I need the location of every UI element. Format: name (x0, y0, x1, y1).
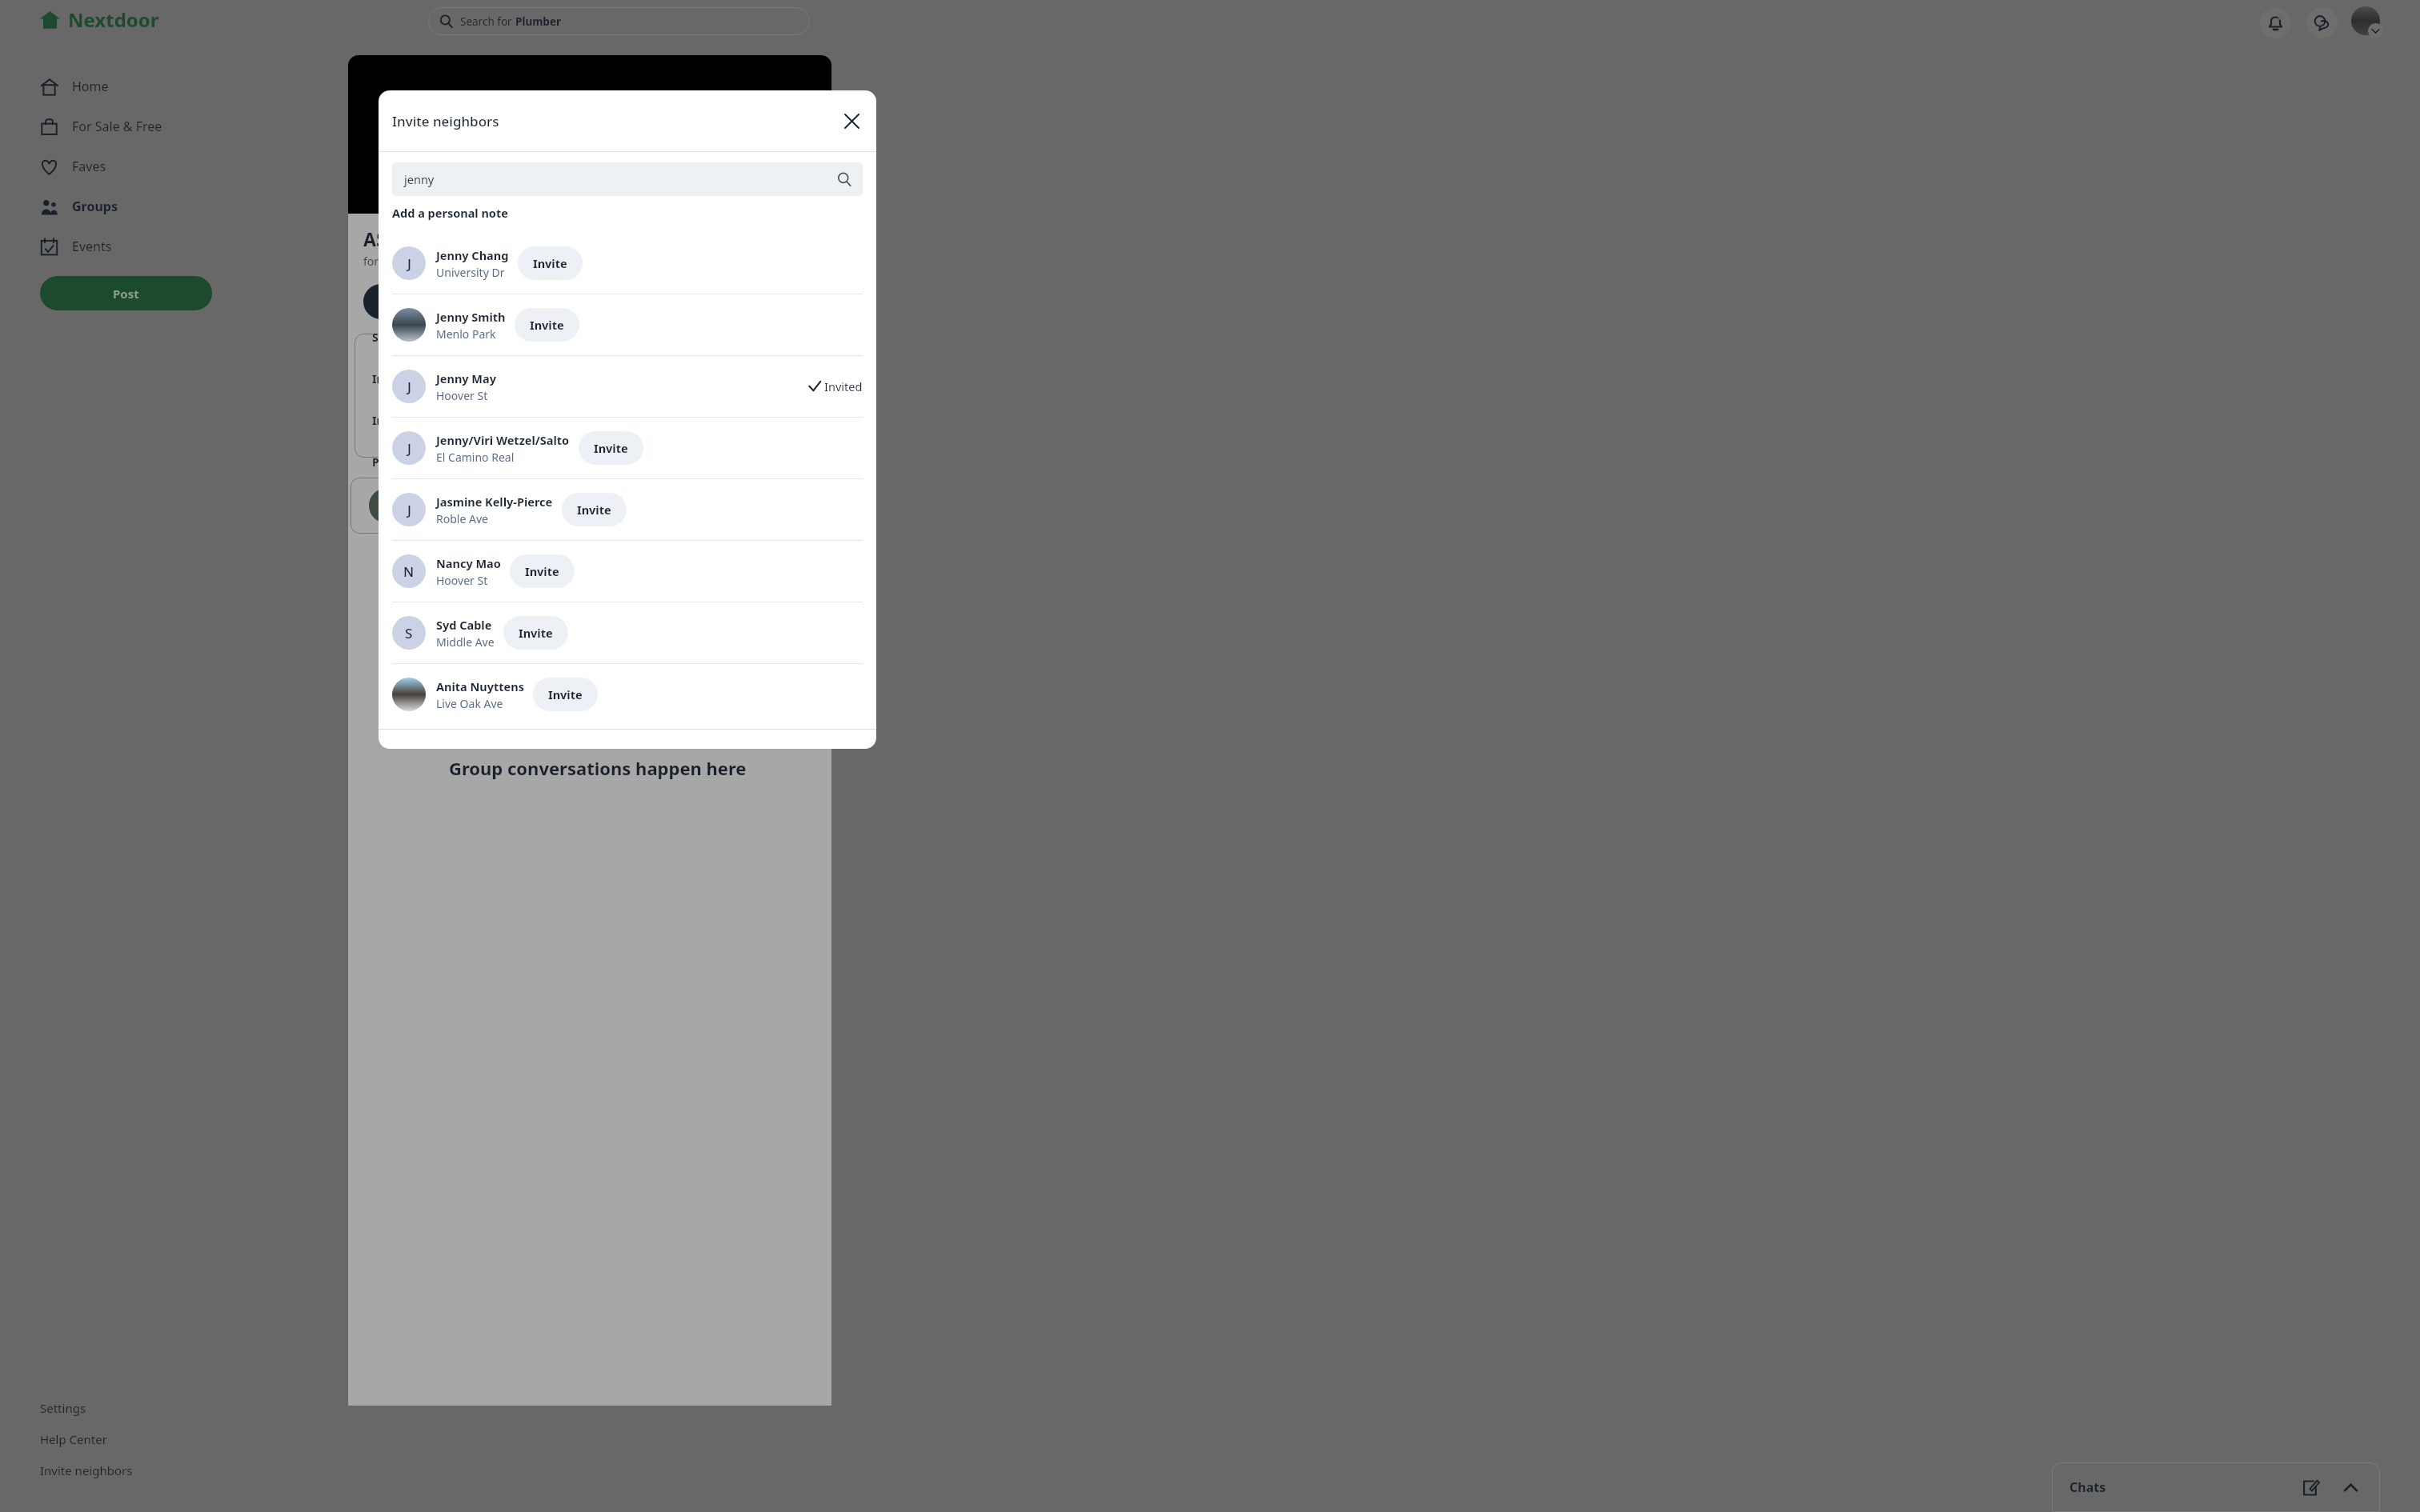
button[interactable]: Messages (2306, 7, 2338, 38)
staticText: AS (363, 226, 387, 251)
button[interactable]: Invite neighbors (40, 1462, 133, 1478)
staticText: El Camino Real (436, 450, 515, 465)
staticText: Anita Nuyttens (436, 678, 524, 694)
staticText: J (407, 378, 411, 396)
staticText: Syd Cable (436, 617, 492, 633)
button[interactable]: J (392, 418, 863, 478)
staticText: A (437, 156, 467, 213)
staticText: Invited (824, 378, 863, 394)
staticText: Invite (548, 686, 583, 702)
staticText: J (407, 254, 411, 273)
button[interactable]: Add a personal note (392, 205, 508, 221)
staticText: Invite (577, 502, 611, 518)
staticText: Menlo Park (436, 326, 496, 342)
button[interactable]: Close (838, 107, 865, 134)
staticText: J (407, 439, 411, 458)
staticText: J (407, 501, 411, 519)
staticText: Nancy Mao (436, 555, 501, 571)
staticText: Home (72, 78, 109, 95)
staticText: Invite (533, 255, 567, 271)
button[interactable]: J (392, 356, 863, 417)
button[interactable]: S (392, 602, 863, 663)
staticText: Jenny May (436, 370, 496, 386)
button[interactable]: Invite (518, 246, 583, 280)
staticText: Jasmine Kelly-Pierce (436, 494, 553, 510)
staticText: S (405, 624, 413, 642)
button[interactable]: Invite (579, 431, 643, 465)
staticText: for (363, 254, 379, 269)
button[interactable]: Settings (40, 1400, 86, 1416)
staticText: Help Center (40, 1431, 107, 1447)
button[interactable]: Invite (515, 308, 579, 342)
staticText: Events (72, 238, 112, 255)
button[interactable]: New chat (2298, 1475, 2322, 1499)
button[interactable]: Invite (510, 554, 575, 588)
staticText: Settings (40, 1400, 86, 1416)
staticText: Search for (460, 14, 515, 29)
staticText: Group conversations happen here (449, 756, 747, 780)
staticText: For Sale & Free (72, 118, 162, 135)
button[interactable]: N (392, 541, 863, 602)
button[interactable]: Help Center (40, 1431, 107, 1447)
button[interactable]: Groups (40, 186, 754, 226)
staticText: Jenny Chang (436, 247, 509, 263)
staticText: Jenny Smith (436, 309, 506, 325)
button[interactable]: Nextdoor (40, 6, 159, 33)
staticText: Middle Ave (436, 634, 495, 650)
staticText: Hoover St (436, 573, 488, 588)
staticText: University Dr (436, 265, 505, 280)
button[interactable]: Post (40, 276, 212, 310)
staticText: N (403, 562, 415, 581)
staticText: Invite (519, 625, 553, 641)
button[interactable]: Anita Nuyttens (392, 664, 863, 725)
staticText: Faves (72, 158, 106, 175)
staticText: Invite neighbors (392, 112, 499, 130)
staticText: Post (113, 286, 139, 302)
button[interactable]: Invite (562, 493, 627, 526)
staticText: Invite (525, 563, 559, 579)
button[interactable]: Chats (2052, 1462, 2380, 1512)
button[interactable]: Events (40, 226, 754, 266)
button[interactable]: jenny (392, 162, 863, 196)
button[interactable]: Search for (428, 7, 810, 35)
button[interactable]: J (392, 479, 863, 540)
staticText: Chats (2069, 1478, 2106, 1496)
button[interactable]: Invited (808, 378, 863, 394)
button[interactable]: J (392, 233, 863, 294)
button[interactable]: Profile menu (2351, 6, 2383, 38)
button[interactable]: Notifications (2260, 7, 2291, 38)
staticText: Live Oak Ave (436, 696, 503, 711)
staticText: Groups (72, 198, 118, 215)
staticText: Invite (594, 440, 628, 456)
button[interactable]: Faves (40, 146, 754, 186)
button[interactable]: Home (40, 66, 754, 106)
staticText: jenny (404, 171, 435, 187)
staticText: Add a personal note (392, 205, 508, 221)
staticText: Invite neighbors (40, 1462, 133, 1478)
button[interactable]: For Sale & Free (40, 106, 754, 146)
button[interactable]: Jenny Smith (392, 294, 863, 355)
staticText: In (372, 413, 384, 428)
button[interactable]: Invite (503, 616, 568, 650)
button[interactable]: Invite (533, 678, 598, 711)
staticText: Nextdoor (68, 6, 159, 33)
staticText: In (372, 371, 384, 386)
staticText: Plumber (515, 14, 561, 29)
staticText: I (389, 294, 394, 310)
staticText: Jenny/Viri Wetzel/Salto (436, 432, 570, 448)
staticText: S (372, 330, 379, 345)
staticText: Hoover St (436, 388, 488, 403)
button[interactable]: Expand chats (2338, 1475, 2362, 1499)
staticText: Roble Ave (436, 511, 488, 526)
staticText: P (372, 454, 379, 470)
button[interactable]: I (363, 284, 419, 319)
staticText: Invite (530, 317, 564, 333)
